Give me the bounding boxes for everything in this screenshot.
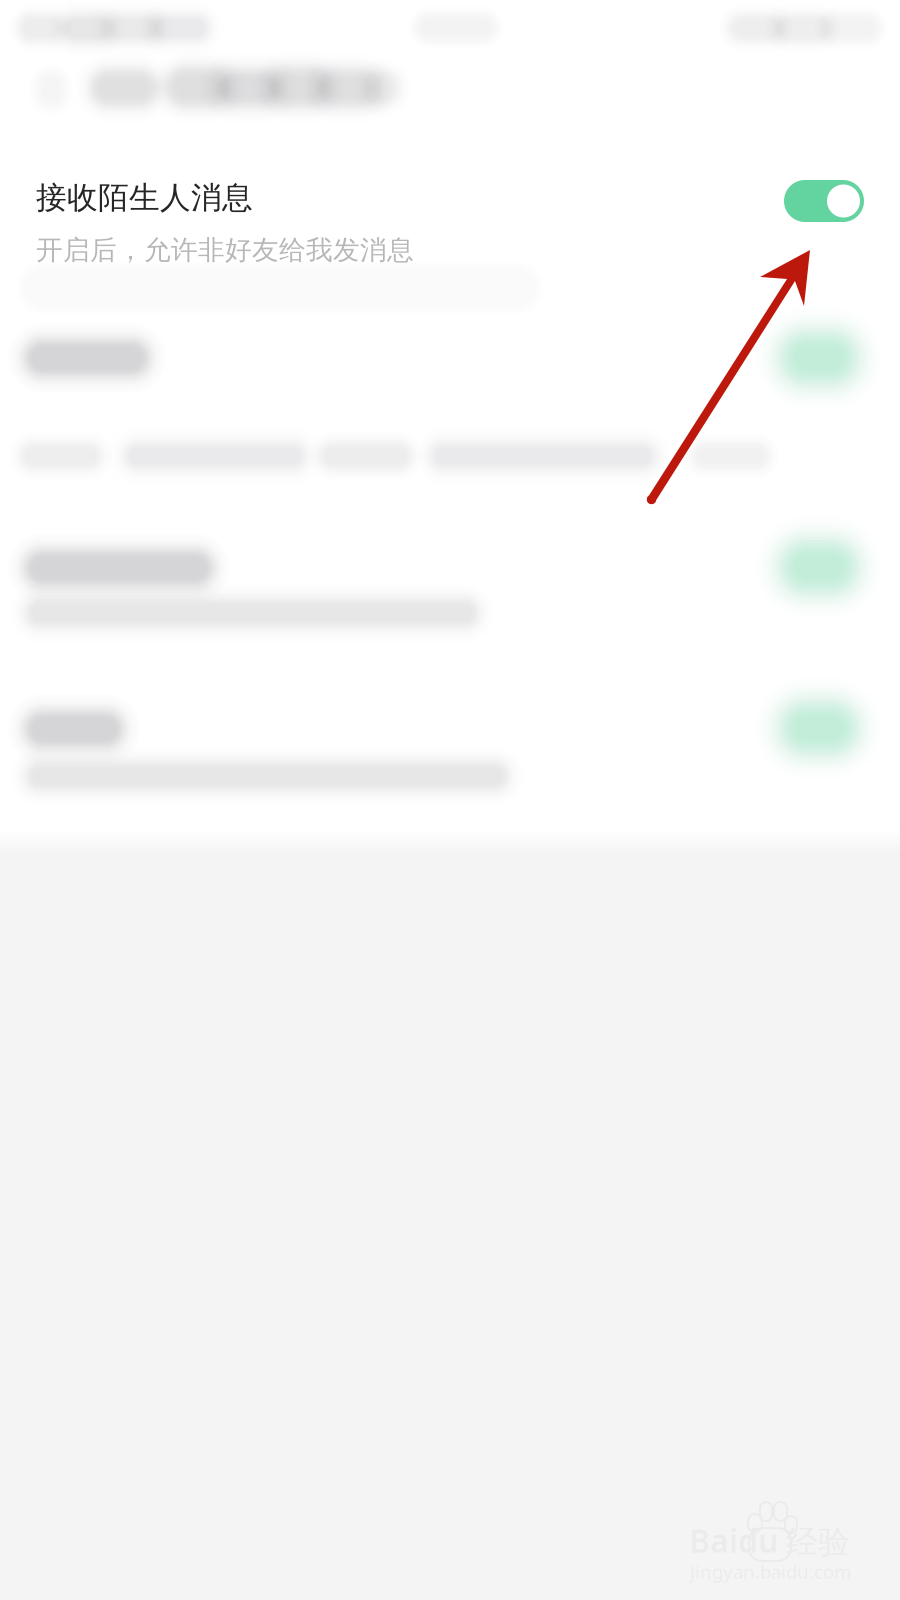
staticText: 开启后，允许非好友给我发消息 [36,234,414,266]
button[interactable]: 接收陌生人消息 [0,162,900,307]
staticText: 接收陌生人消息 [36,179,253,217]
staticText: Baidu 经验 [689,1519,850,1562]
